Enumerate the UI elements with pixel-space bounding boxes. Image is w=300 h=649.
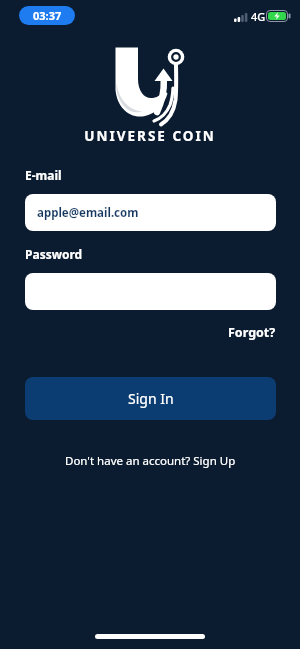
button[interactable]: Sign In	[25, 377, 276, 420]
button[interactable]	[25, 273, 276, 310]
staticText: Password	[25, 246, 83, 262]
staticText: E-mail	[25, 167, 62, 183]
staticText: apple@email.com	[37, 205, 139, 221]
button[interactable]: Don't have an account? Sign Up	[65, 453, 236, 469]
staticText: 03:37	[33, 8, 62, 23]
staticText: UNIVERSE COIN	[0, 127, 300, 145]
staticText: 4G	[251, 9, 266, 24]
button[interactable]: 03:37	[19, 6, 75, 25]
button[interactable]: apple@email.com	[25, 194, 276, 231]
staticText: Sign In	[128, 389, 174, 408]
button[interactable]: Forgot?	[228, 324, 276, 341]
